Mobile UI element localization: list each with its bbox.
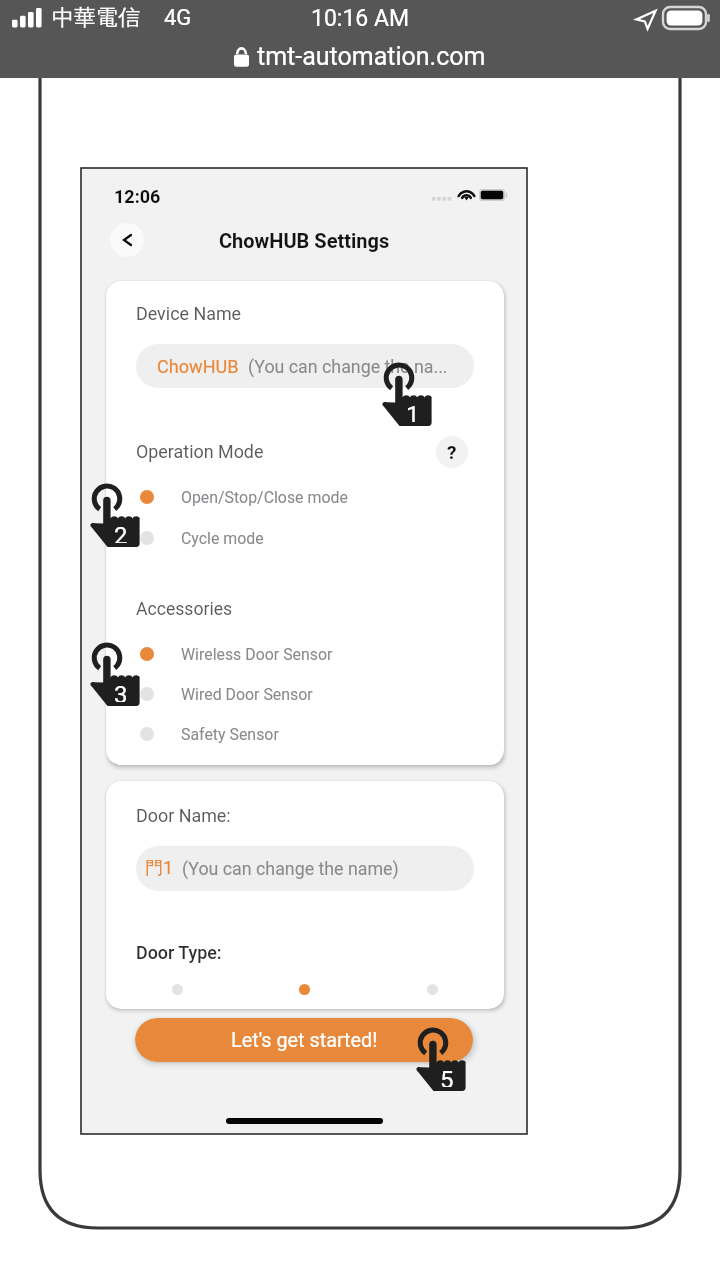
- button[interactable]: Safety Sensor: [106, 714, 504, 754]
- staticText: 5: [440, 1066, 454, 1087]
- staticText: Wired Door Sensor: [181, 685, 313, 704]
- button[interactable]: Back: [110, 223, 144, 257]
- staticText: (You can change the na...: [248, 356, 448, 377]
- staticText: Cycle mode: [181, 529, 264, 548]
- staticText: Device Name: [136, 303, 242, 324]
- staticText: Door Type:: [136, 942, 222, 963]
- staticText: Open/Stop/Close mode: [181, 488, 348, 507]
- button[interactable]: Wired Door Sensor: [106, 674, 504, 714]
- staticText: 1: [406, 401, 420, 422]
- button[interactable]: Cycle mode: [106, 518, 504, 558]
- staticText: 2: [114, 522, 128, 543]
- staticText: 10:16 AM: [311, 5, 410, 32]
- staticText: Let's get started!: [231, 1029, 378, 1052]
- staticText: 12:06: [114, 186, 161, 207]
- button[interactable]: ChowHUB: [136, 344, 474, 388]
- button[interactable]: Help: [436, 436, 468, 468]
- staticText: tmt-automation.com: [257, 42, 486, 71]
- button[interactable]: 門1: [136, 846, 474, 891]
- staticText: ?: [447, 441, 457, 463]
- staticText: Wireless Door Sensor: [181, 645, 333, 664]
- staticText: 門1: [145, 857, 174, 880]
- staticText: Door Name:: [136, 805, 231, 826]
- staticText: ChowHUB: [157, 356, 239, 377]
- staticText: Operation Mode: [136, 441, 264, 462]
- button[interactable]: Wireless Door Sensor: [106, 634, 504, 674]
- staticText: 3: [114, 681, 128, 702]
- button[interactable]: Let's get started!: [135, 1018, 473, 1062]
- button[interactable]: Open/Stop/Close mode: [106, 477, 504, 517]
- staticText: Safety Sensor: [181, 725, 279, 744]
- staticText: 4G: [164, 5, 192, 31]
- staticText: ChowHUB Settings: [219, 229, 390, 252]
- staticText: Accessories: [136, 599, 233, 620]
- staticText: (You can change the name): [182, 858, 399, 879]
- staticText: 中華電信: [52, 4, 140, 32]
